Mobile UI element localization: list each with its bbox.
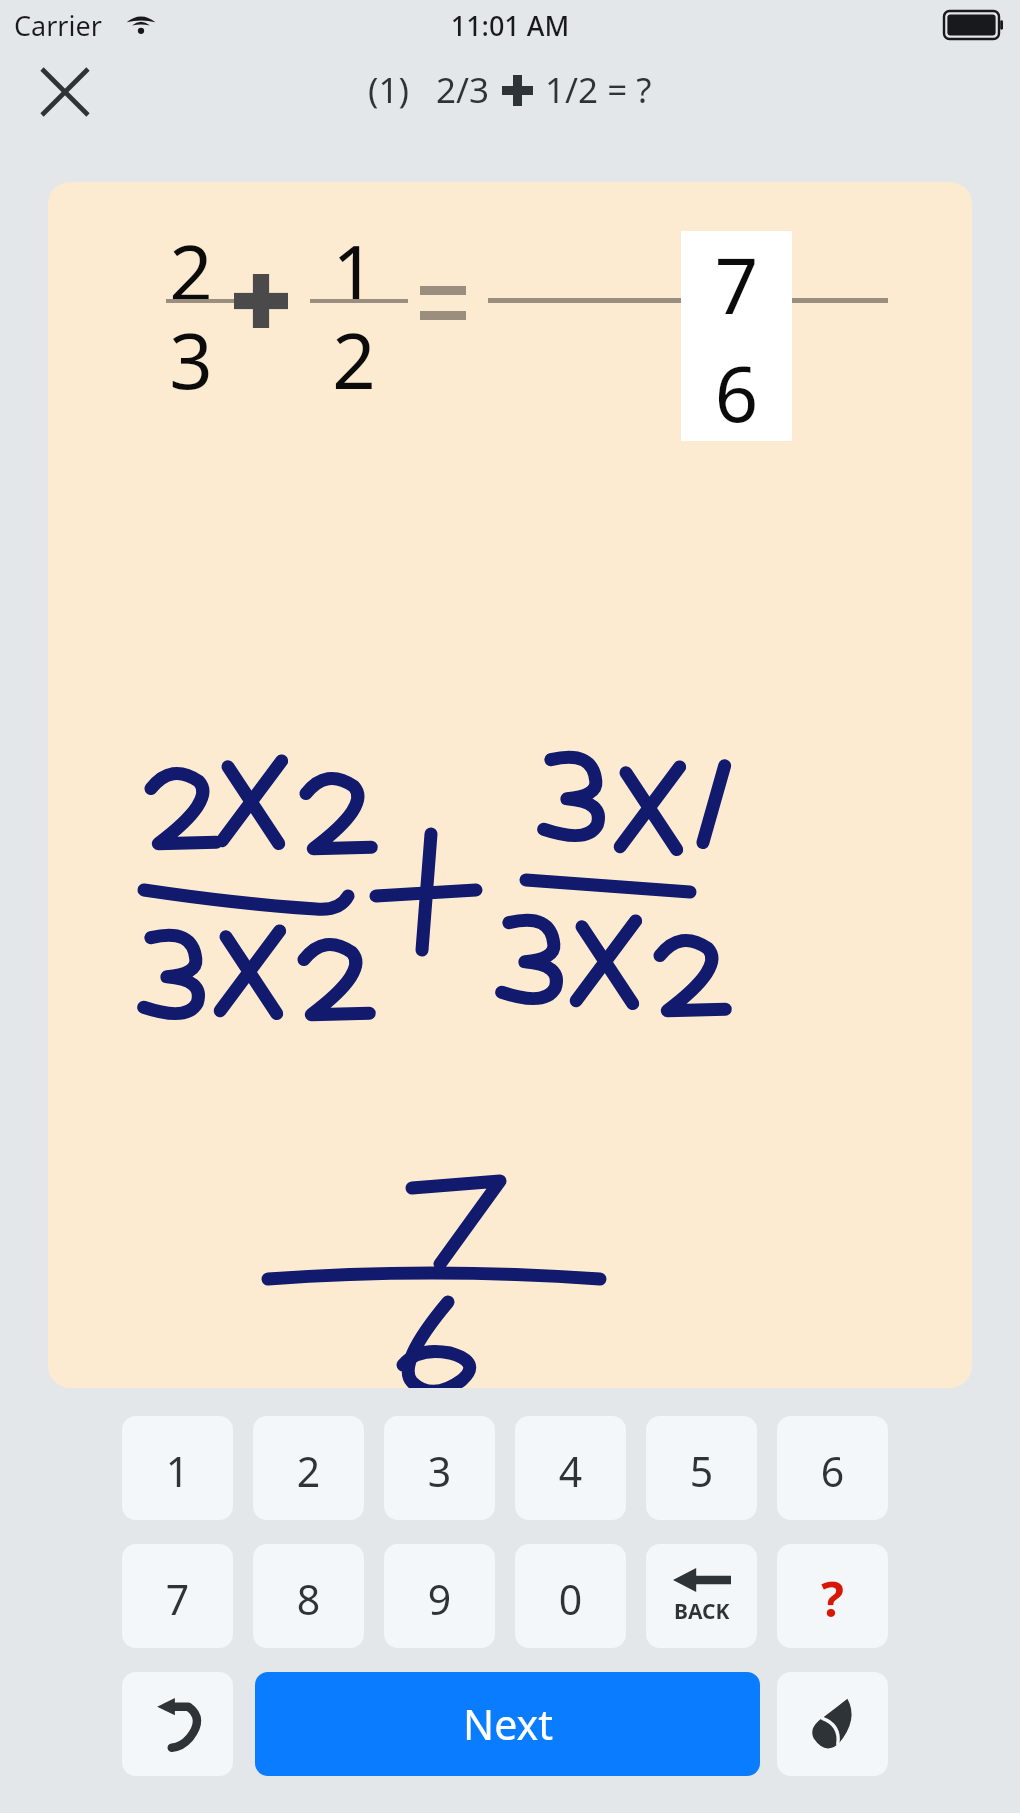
staticText: 1 [316,220,392,324]
staticText: 5 [646,1443,757,1499]
button[interactable]: 4 [515,1416,626,1520]
staticText: Carrier [14,7,102,44]
staticText: 11:01 AM [0,7,1020,44]
staticText: 7 [681,233,792,337]
button[interactable]: 6 [777,1416,888,1520]
staticText: 4 [515,1443,626,1499]
button[interactable]: 8 [253,1544,364,1648]
button[interactable]: Close [25,58,105,126]
staticText: 6 [681,341,792,445]
staticText: 6 [777,1443,888,1499]
button[interactable]: 7 [122,1544,233,1648]
staticText: 8 [253,1571,364,1627]
staticText: BACK [674,1597,730,1626]
staticText: 7 [122,1571,233,1627]
button[interactable]: Hint [777,1544,888,1648]
staticText: 2 [253,1443,364,1499]
button[interactable]: 7 [681,231,792,441]
button[interactable]: 2 [253,1416,364,1520]
staticText: Next [463,1696,553,1752]
button[interactable]: 9 [384,1544,495,1648]
staticText: 2 [153,220,229,324]
button[interactable]: 1 [122,1416,233,1520]
button[interactable]: Eraser [777,1672,888,1776]
staticText: 1/2 = ? [545,66,652,114]
staticText: ? [777,1566,888,1631]
staticText: 3 [153,308,229,412]
staticText: 1 [122,1443,233,1499]
staticText: 9 [384,1571,495,1627]
button[interactable]: Undo [122,1672,233,1776]
button[interactable]: 5 [646,1416,757,1520]
button[interactable]: Back [646,1544,757,1648]
staticText: 2/3 [436,66,490,114]
button[interactable]: Next [255,1672,760,1776]
staticText: 2 [316,308,392,412]
staticText: 3 [384,1443,495,1499]
staticText: 0 [515,1571,626,1627]
staticText: (1) [368,66,410,114]
button[interactable]: 3 [384,1416,495,1520]
button[interactable]: 0 [515,1544,626,1648]
